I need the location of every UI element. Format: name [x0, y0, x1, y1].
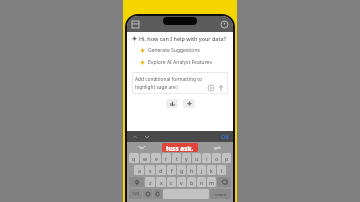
staticText: y	[185, 155, 188, 162]
button[interactable]: f	[167, 165, 176, 175]
staticText: Hi, how can I help with your data?	[139, 35, 227, 42]
button[interactable]: a	[134, 165, 144, 175]
button[interactable]: Menu	[131, 20, 140, 29]
button[interactable]: Explore AI Analyst Features	[132, 58, 228, 67]
staticText: get	[214, 145, 221, 151]
button[interactable]: s	[145, 165, 155, 175]
button[interactable]: y	[182, 153, 191, 163]
staticText: x	[160, 179, 163, 186]
button[interactable]: m	[207, 177, 216, 187]
button[interactable]: c	[167, 177, 176, 187]
button[interactable]: e	[151, 153, 161, 163]
staticText: Explore AI Analyst Features	[148, 59, 212, 66]
button[interactable]: Magic	[183, 99, 195, 108]
button[interactable]: Add conditional formatting to	[132, 72, 228, 94]
staticText: f	[171, 167, 173, 174]
button[interactable]: n	[197, 177, 206, 187]
button[interactable]: b	[187, 177, 196, 187]
button[interactable]: t	[172, 153, 181, 163]
button[interactable]: w	[140, 153, 150, 163]
button[interactable]: Shift	[129, 177, 144, 187]
staticText: b	[190, 179, 194, 186]
staticText: "to"	[138, 145, 146, 151]
button[interactable]: Charts	[166, 99, 178, 108]
staticText: c	[170, 179, 173, 186]
staticText: r	[165, 155, 168, 162]
button[interactable]: v	[177, 177, 186, 187]
button[interactable]: u	[192, 153, 201, 163]
button[interactable]: x	[156, 177, 166, 187]
staticText: Add conditional formatting to	[135, 76, 202, 83]
staticText: h	[190, 167, 194, 174]
staticText: t	[176, 155, 178, 162]
staticText: i	[206, 155, 208, 162]
staticText: v	[180, 179, 183, 186]
staticText: l	[221, 167, 223, 174]
button[interactable]: h	[187, 165, 196, 175]
staticText: w	[143, 155, 148, 162]
button[interactable]: r	[162, 153, 171, 163]
button[interactable]: l	[217, 165, 226, 175]
staticText: OK	[221, 133, 229, 140]
button[interactable]: Add context	[207, 84, 215, 92]
staticText: z	[149, 179, 152, 186]
staticText: a	[138, 167, 141, 174]
button[interactable]: j	[197, 165, 206, 175]
staticText: o	[215, 155, 219, 162]
button[interactable]: q	[129, 153, 139, 163]
button[interactable]: Dictation	[153, 189, 162, 199]
button[interactable]: o	[212, 153, 221, 163]
staticText: e	[155, 155, 158, 162]
button[interactable]: Next	[143, 133, 151, 141]
staticText: d	[159, 167, 163, 174]
staticText: s	[149, 167, 152, 174]
button[interactable]: 123	[129, 189, 142, 199]
button[interactable]: p	[222, 153, 231, 163]
button[interactable]: OK	[221, 133, 229, 140]
staticText: q	[132, 155, 136, 162]
staticText: return	[215, 192, 227, 197]
button[interactable]: Backspace	[217, 177, 231, 187]
staticText: Generate Suggestions	[148, 47, 200, 54]
button[interactable]: return	[210, 189, 231, 199]
button[interactable]: Previous	[131, 133, 139, 141]
staticText: m	[209, 179, 214, 186]
button[interactable]: Emoji	[143, 189, 152, 199]
staticText: u	[195, 155, 199, 162]
button[interactable]: d	[156, 165, 166, 175]
staticText: j	[201, 167, 203, 174]
staticText: highlight sage are|	[135, 84, 179, 91]
staticText: k	[210, 167, 213, 174]
button[interactable]: z	[145, 177, 155, 187]
staticText: Juss ask.	[166, 144, 194, 151]
button[interactable]: Generate Suggestions	[132, 46, 228, 55]
staticText: n	[200, 179, 204, 186]
button[interactable]: i	[202, 153, 211, 163]
button[interactable]: k	[207, 165, 216, 175]
button[interactable]: g	[177, 165, 186, 175]
button[interactable]: Send	[217, 84, 225, 92]
button[interactable]: History	[220, 20, 229, 29]
staticText: g	[180, 167, 184, 174]
staticText: p	[225, 155, 229, 162]
staticText: 123	[132, 191, 140, 197]
